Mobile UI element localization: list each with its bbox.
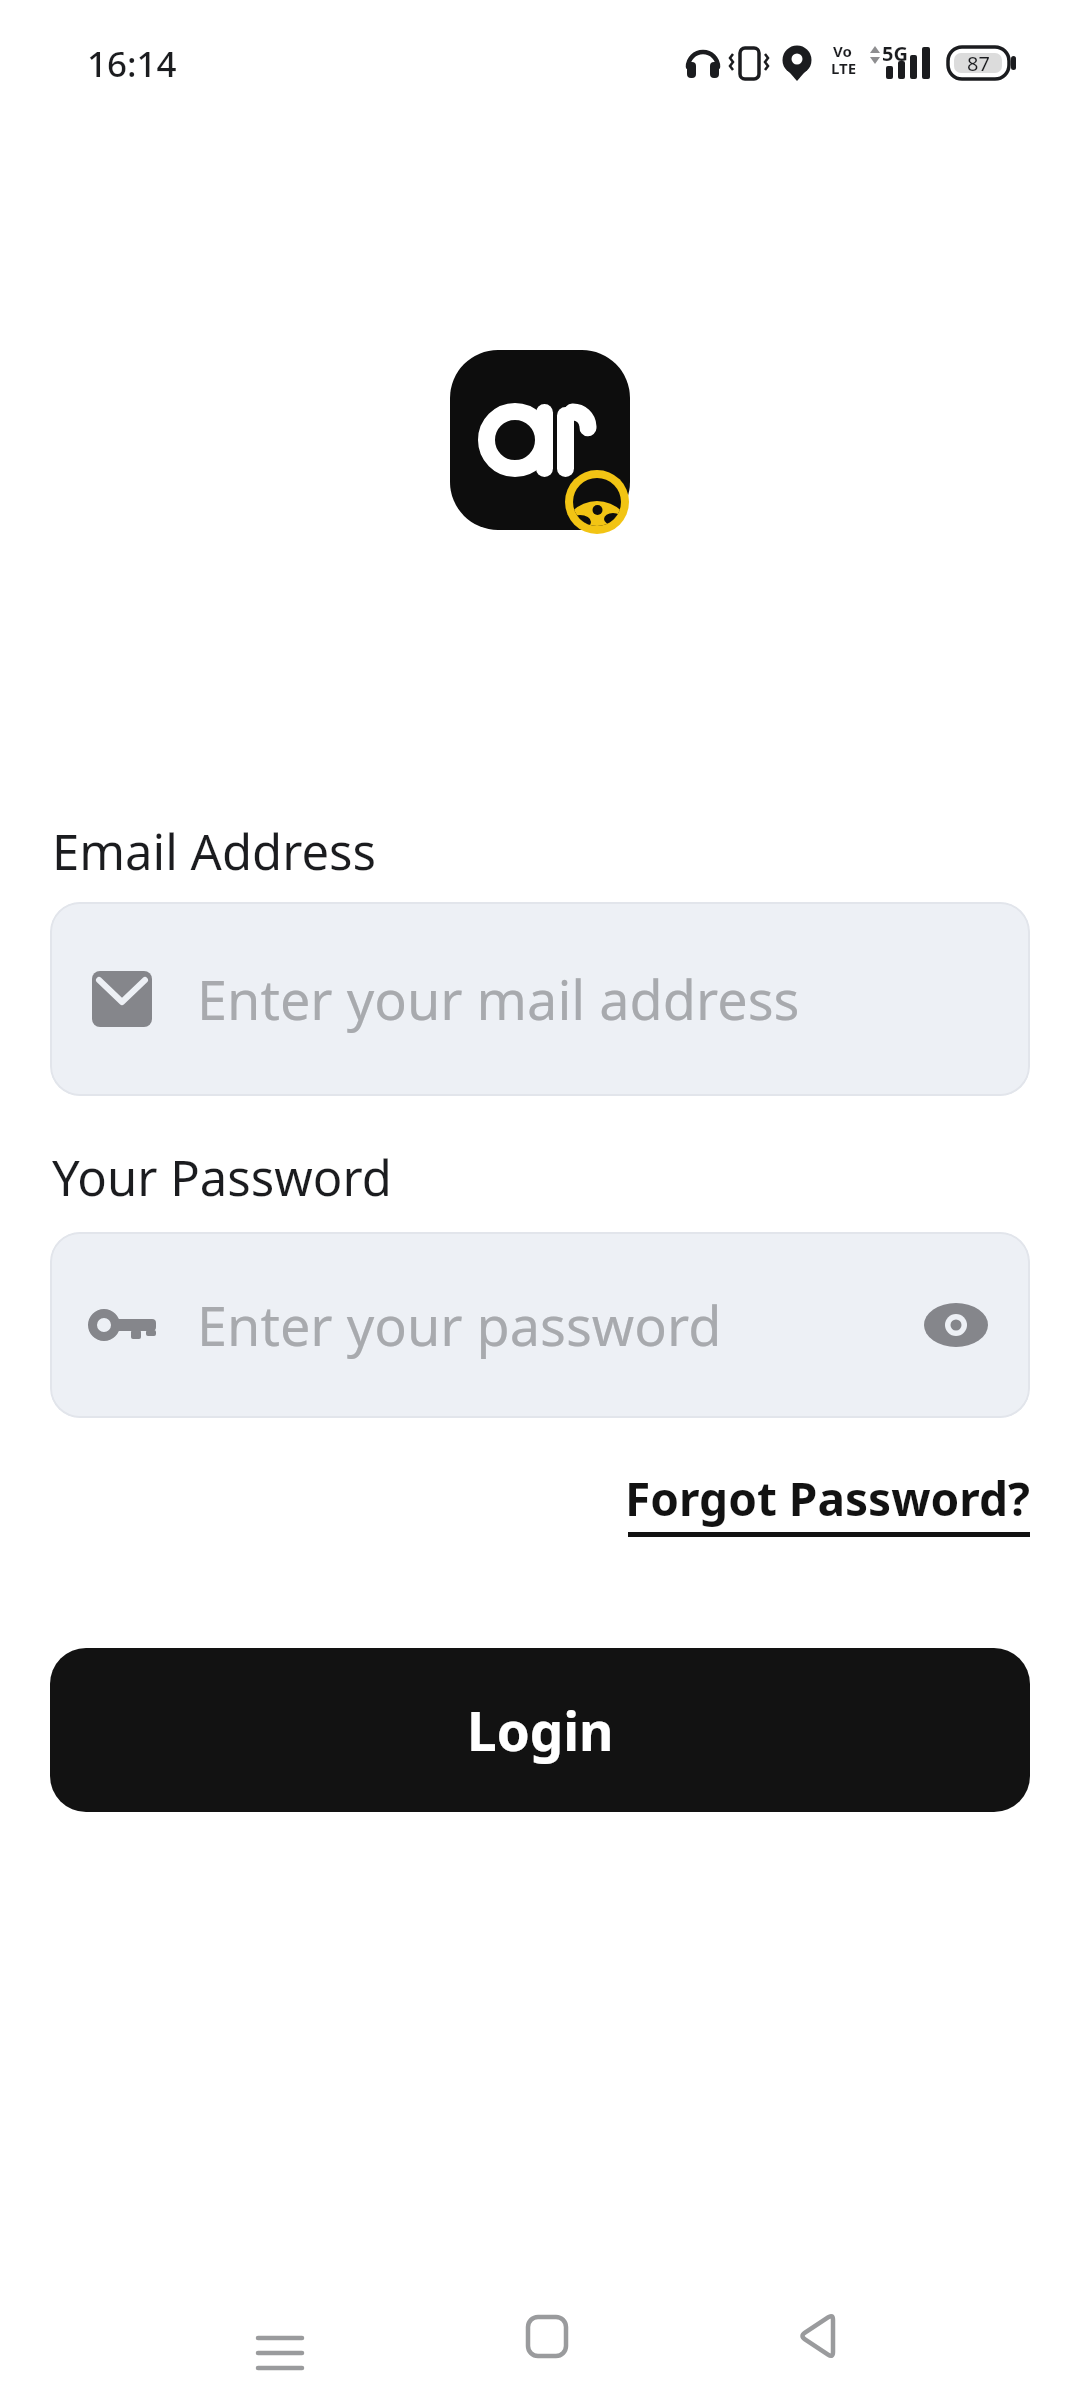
button[interactable] xyxy=(924,1301,988,1349)
button[interactable]: Login xyxy=(50,1648,1030,1812)
button[interactable] xyxy=(230,2290,330,2380)
staticText: Vo xyxy=(833,41,852,61)
staticText: Forgot Password? xyxy=(625,1467,1030,1530)
staticText: 5G xyxy=(882,40,908,67)
staticText: Enter your mail address xyxy=(197,962,800,1036)
staticText: 87 xyxy=(967,50,990,77)
button[interactable]: Enter your password xyxy=(50,1232,1030,1418)
staticText: Your Password xyxy=(52,1144,392,1211)
button[interactable] xyxy=(766,2290,866,2380)
staticText: Login xyxy=(467,1694,614,1766)
button[interactable] xyxy=(497,2290,597,2380)
button[interactable]: Forgot Password? xyxy=(530,1462,1030,1534)
staticText: LTE xyxy=(831,58,857,78)
staticText: 16:14 xyxy=(87,40,177,88)
staticText: Email Address xyxy=(52,818,376,885)
button[interactable]: Enter your mail address xyxy=(50,902,1030,1096)
staticText: Enter your password xyxy=(197,1288,924,1362)
